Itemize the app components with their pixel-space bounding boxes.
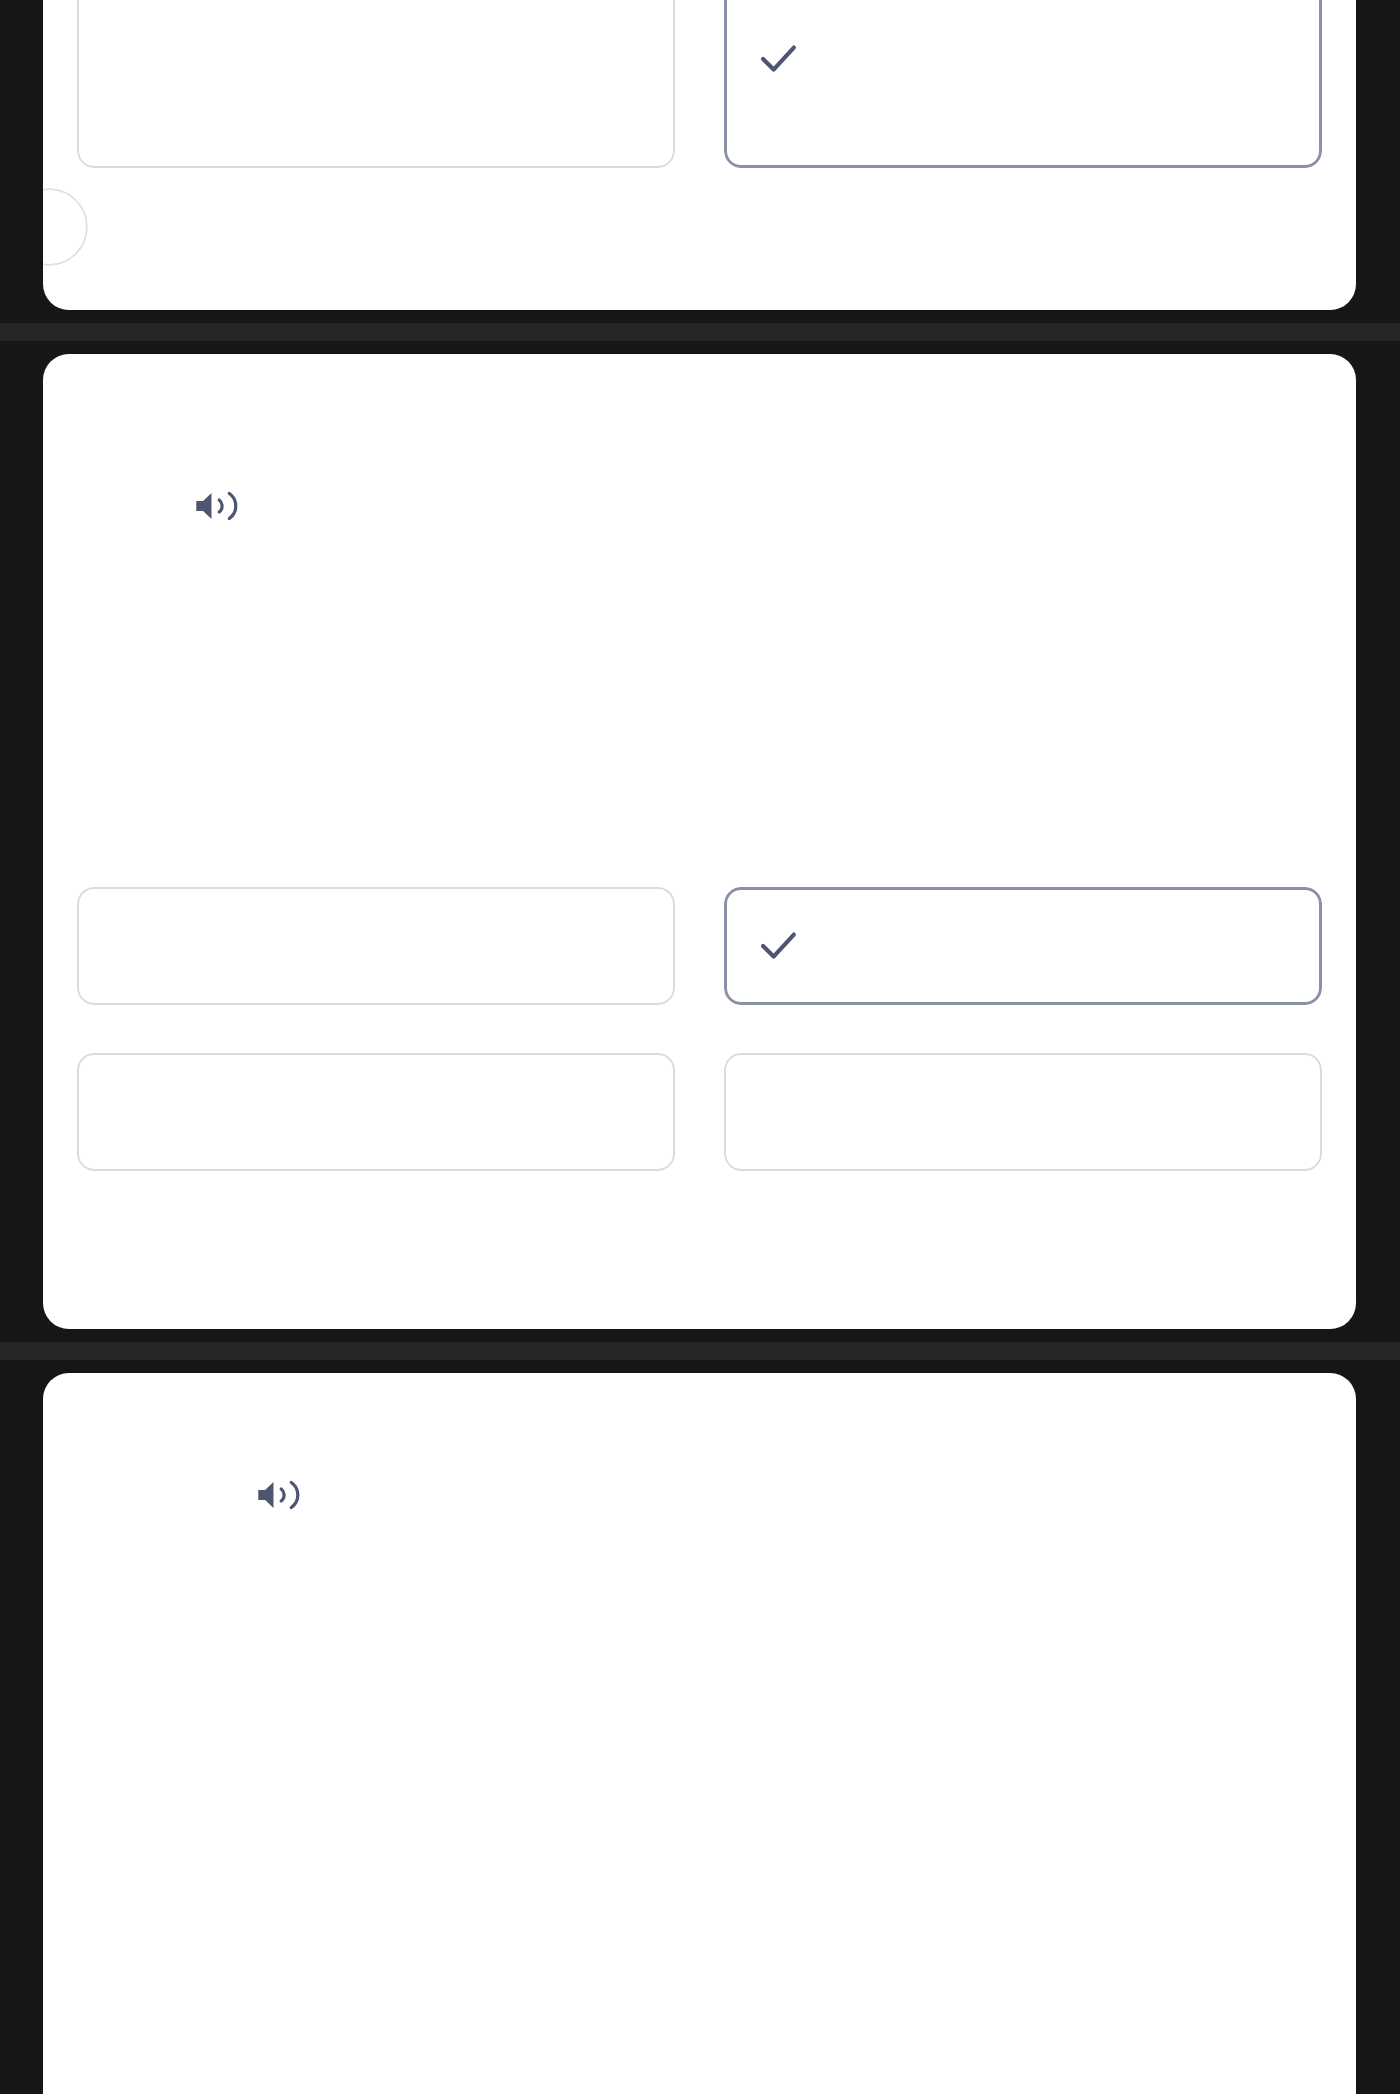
button[interactable]: Play audio [43, 188, 88, 266]
button[interactable]: Play audio [183, 476, 243, 536]
button[interactable] [724, 0, 1322, 168]
button[interactable] [724, 1053, 1322, 1171]
button[interactable]: Play audio [245, 1465, 305, 1525]
button[interactable] [77, 887, 675, 1005]
button[interactable] [77, 0, 675, 168]
button[interactable] [724, 887, 1322, 1005]
button[interactable] [77, 1053, 675, 1171]
